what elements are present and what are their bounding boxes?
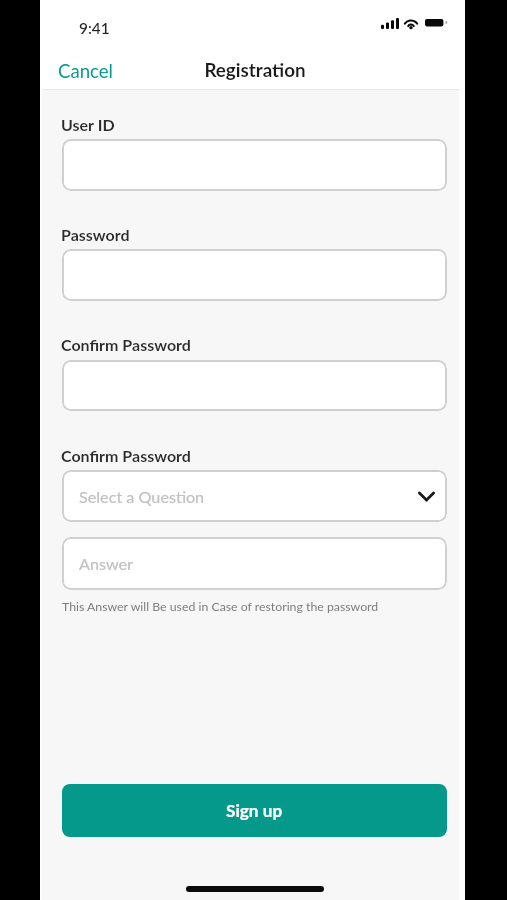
other: Open question list (418, 491, 435, 502)
staticText: Registration (43, 58, 467, 81)
staticText: 9:41 (79, 19, 110, 37)
other: Wi-Fi (403, 17, 419, 29)
staticText: User ID (61, 115, 115, 134)
staticText: Cancel (58, 60, 113, 82)
other: Cellular signal (381, 18, 399, 29)
staticText: Answer (79, 554, 134, 573)
button[interactable]: Answer (62, 537, 447, 590)
staticText: Confirm Password (61, 446, 191, 465)
staticText: This Answer will Be used in Case of rest… (62, 599, 379, 614)
staticText: Password (61, 225, 130, 244)
staticText: Sign up (226, 800, 283, 821)
staticText: Confirm Password (61, 335, 191, 354)
staticText: Select a Question (79, 487, 205, 506)
other: Battery (425, 19, 449, 27)
button[interactable]: Select a Question (62, 470, 447, 522)
button[interactable]: Sign up (62, 784, 447, 837)
button[interactable] (62, 249, 447, 301)
button[interactable] (62, 360, 447, 411)
button[interactable] (62, 139, 447, 191)
button[interactable]: Cancel (44, 55, 131, 89)
